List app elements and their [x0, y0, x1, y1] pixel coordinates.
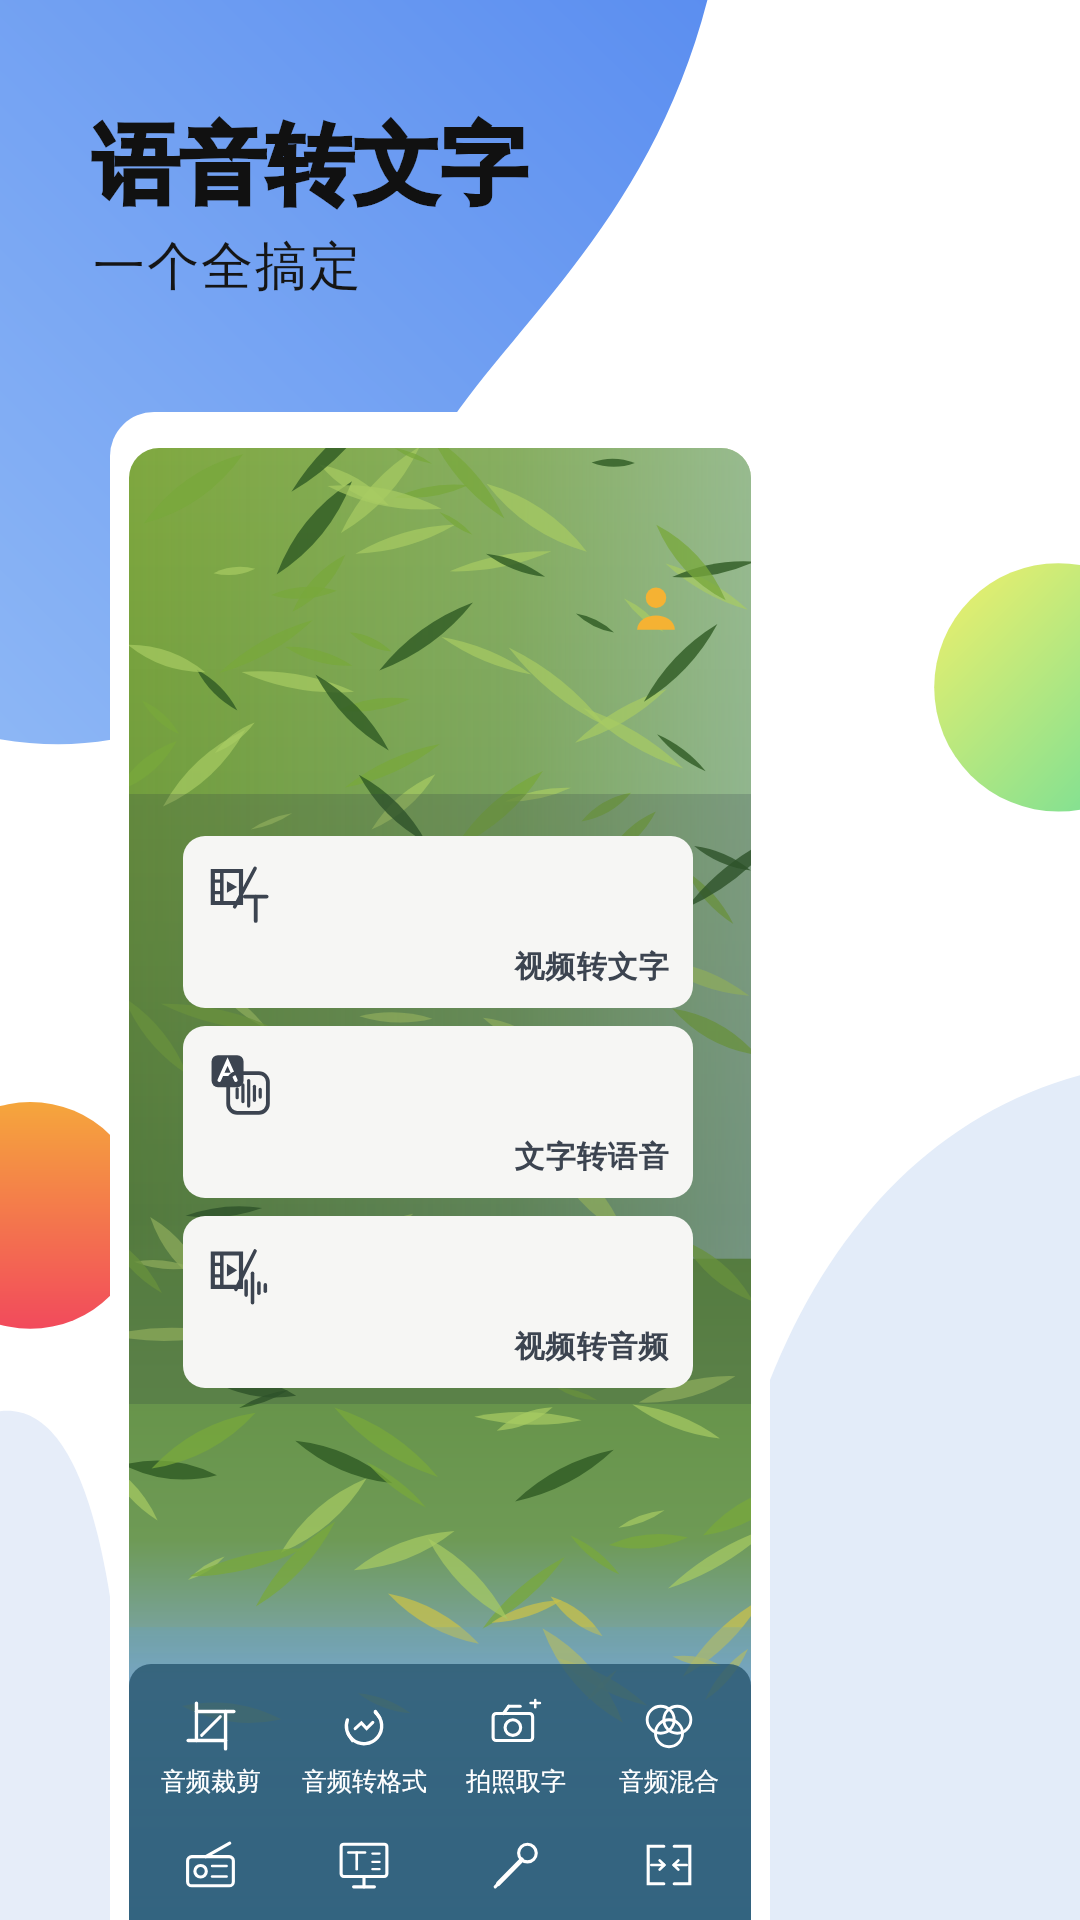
- button[interactable]: Subtitle: [294, 1839, 434, 1891]
- button[interactable]: Record: [446, 1839, 586, 1891]
- staticText: 视频转文字: [514, 948, 669, 986]
- button[interactable]: 音频裁剪: [141, 1698, 281, 1799]
- button[interactable]: Merge: [599, 1839, 739, 1891]
- button[interactable]: 音频混合: [599, 1698, 739, 1799]
- staticText: 拍照取字: [466, 1766, 566, 1797]
- staticText: 一个全搞定: [92, 234, 362, 300]
- staticText: 音频转格式: [302, 1766, 427, 1797]
- button[interactable]: 拍照取字: [446, 1698, 586, 1799]
- button[interactable]: 视频转音频: [183, 1216, 693, 1388]
- button[interactable]: 音频转格式: [294, 1698, 434, 1799]
- staticText: 音频混合: [619, 1766, 719, 1797]
- staticText: 文字转语音: [514, 1138, 669, 1176]
- button[interactable]: Radio: [141, 1839, 281, 1891]
- button[interactable]: 视频转文字: [183, 836, 693, 1008]
- staticText: 语音转文字: [92, 112, 527, 220]
- button[interactable]: 文字转语音: [183, 1026, 693, 1198]
- button[interactable]: Profile: [629, 580, 683, 634]
- staticText: 视频转音频: [514, 1328, 669, 1366]
- staticText: 音频裁剪: [161, 1766, 261, 1797]
